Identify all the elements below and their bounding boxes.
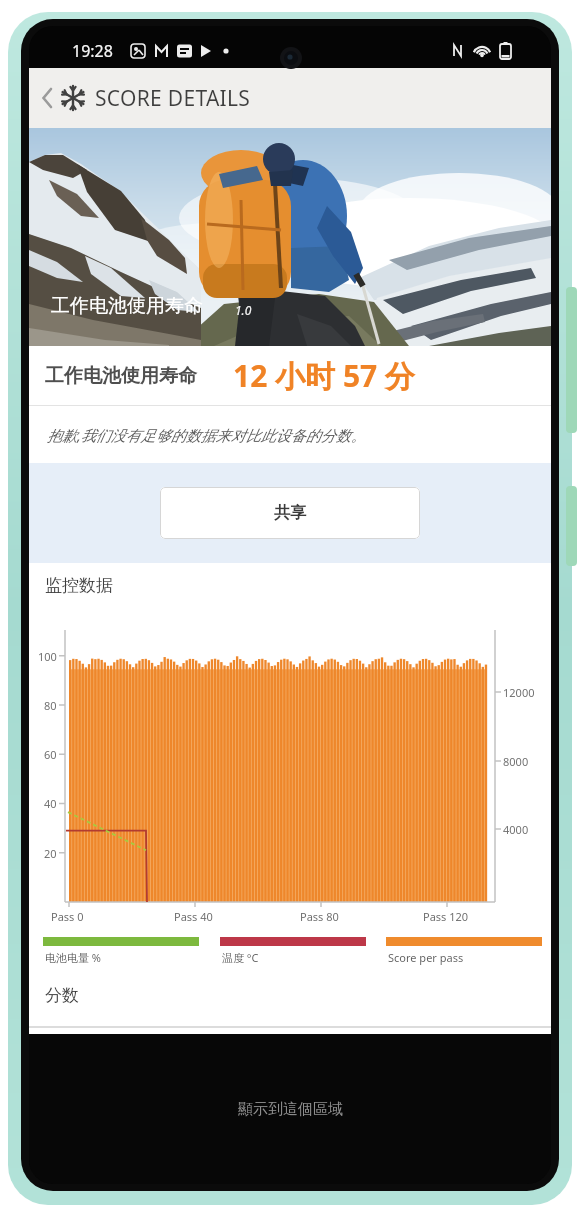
staticText: 19:28 — [72, 40, 113, 62]
button[interactable]: 共享 — [160, 487, 420, 539]
staticText: Pass 0 — [51, 909, 84, 924]
staticText: SCORE DETAILS — [95, 84, 251, 113]
staticText: 共享 — [274, 503, 306, 523]
staticText: 4000 — [503, 822, 529, 837]
staticText: 100 — [38, 649, 57, 664]
button[interactable] — [37, 78, 57, 118]
staticText: 20 — [44, 846, 57, 861]
staticText: 温度 °C — [222, 950, 259, 965]
staticText: 分数 — [45, 985, 79, 1006]
staticText: 8000 — [503, 754, 529, 769]
staticText: 40 — [44, 796, 57, 811]
staticText: Pass 120 — [423, 909, 469, 924]
staticText: 80 — [44, 698, 57, 713]
staticText: 60 — [44, 747, 57, 762]
staticText: 工作电池使用寿命 — [51, 294, 203, 318]
staticText: 抱歉,我们没有足够的数据来对比此设备的分数。 — [47, 425, 366, 445]
staticText: Pass 80 — [300, 909, 339, 924]
staticText: 12 小时 57 分 — [233, 355, 416, 396]
staticText: Score per pass — [388, 950, 464, 965]
staticText: 顯示到這個區域 — [238, 1100, 343, 1119]
staticText: 监控数据 — [45, 575, 113, 596]
staticText: 12000 — [503, 685, 535, 700]
staticText: 电池电量 % — [45, 950, 102, 965]
staticText: 工作电池使用寿命 — [45, 364, 197, 388]
staticText: Pass 40 — [174, 909, 213, 924]
staticText: 1.0 — [235, 302, 252, 318]
